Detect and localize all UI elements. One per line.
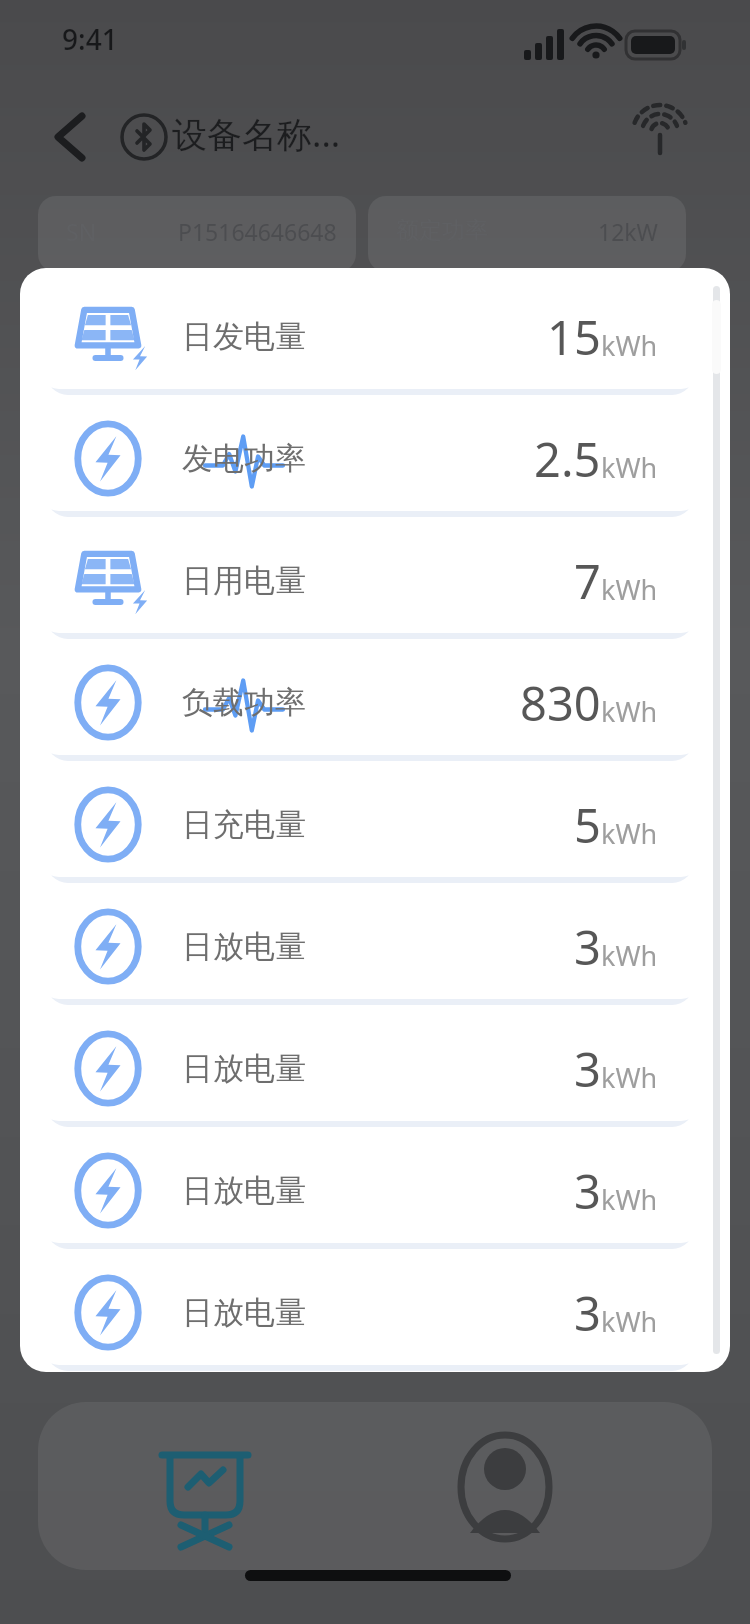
staticText: 日放电量 <box>182 927 306 966</box>
staticText: 3 <box>574 1281 601 1345</box>
staticText: P15164646648 <box>178 216 337 247</box>
button[interactable]: 日充电量 <box>40 772 700 877</box>
button[interactable]: 日用电量 <box>40 528 700 633</box>
staticText: 频率 <box>262 1286 474 1320</box>
button[interactable]: 频率 <box>262 1286 474 1320</box>
staticText: 7 <box>574 549 601 613</box>
staticText: 日充电量 <box>182 805 306 844</box>
staticText: kWh <box>601 449 658 486</box>
staticText: 12kW <box>598 216 658 247</box>
button[interactable]: 日放电量 <box>40 1138 700 1243</box>
staticText: kWh <box>601 937 658 974</box>
staticText: 日放电量 <box>182 1049 306 1088</box>
button[interactable]: 发电功率 <box>40 406 700 511</box>
staticText: 日发电量 <box>182 317 306 356</box>
staticText: 日放电量 <box>182 1171 306 1210</box>
staticText: 3 <box>574 1037 601 1101</box>
button[interactable]: 日放电量 <box>40 894 700 999</box>
staticText: 设备名称... <box>172 110 341 158</box>
staticText: 充电 <box>492 1286 704 1320</box>
button[interactable]: 电源 <box>38 1286 250 1320</box>
staticText: 15 <box>547 305 601 369</box>
button[interactable]: 充电 <box>492 1286 704 1320</box>
staticText: 3 <box>574 1159 601 1223</box>
staticText: kWh <box>601 571 658 608</box>
staticText: 日用电量 <box>182 561 306 600</box>
staticText: 负载功率 <box>182 683 306 722</box>
button[interactable]: 负载功率 <box>40 650 700 755</box>
button[interactable]: 日放电量 <box>40 1260 700 1365</box>
staticText: 3 <box>574 915 601 979</box>
staticText: 5 <box>574 793 601 857</box>
staticText: kWh <box>601 1303 658 1340</box>
staticText: 2.5 <box>534 427 601 491</box>
staticText: kWh <box>601 1059 658 1096</box>
staticText: kWh <box>601 693 658 730</box>
staticText: kWh <box>601 327 658 364</box>
staticText: 发电功率 <box>182 439 306 478</box>
button[interactable]: 日放电量 <box>40 1016 700 1121</box>
staticText: kWh <box>601 815 658 852</box>
staticText: 830 <box>520 671 601 735</box>
staticText: kWh <box>601 1181 658 1218</box>
staticText: 9:41 <box>62 20 118 58</box>
staticText: 电源 <box>38 1286 250 1320</box>
staticText: 日放电量 <box>182 1293 306 1332</box>
button[interactable]: 日发电量 <box>40 284 700 389</box>
